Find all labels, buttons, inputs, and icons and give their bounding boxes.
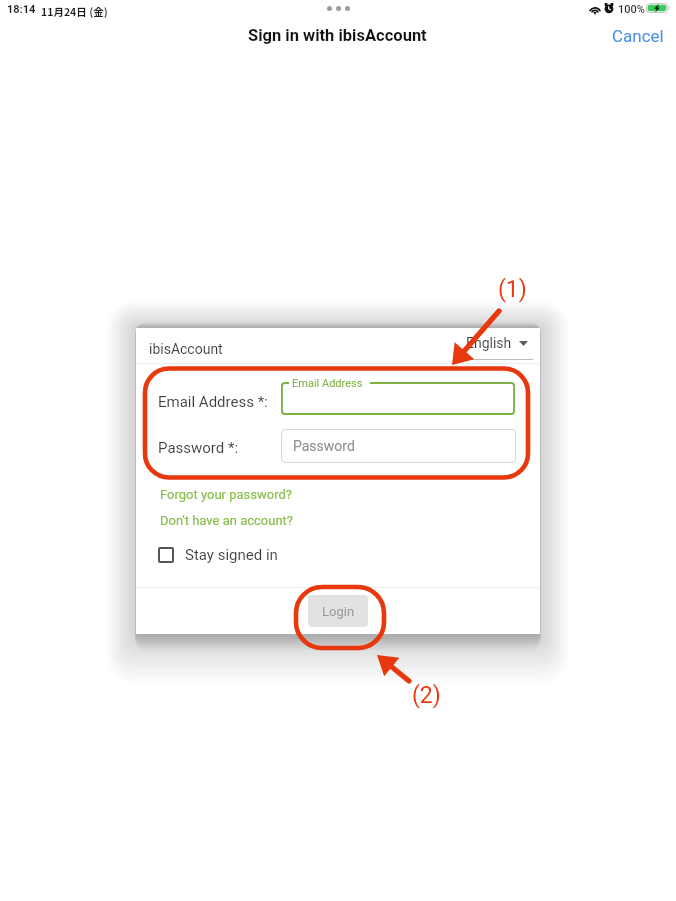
- button[interactable]: Password: [281, 429, 516, 463]
- staticText: Password: [293, 438, 355, 454]
- staticText: Sign in with ibisAccount: [248, 26, 427, 45]
- staticText: (2): [412, 682, 441, 709]
- staticText: Email Address *:: [158, 393, 268, 411]
- staticText: Cancel: [612, 26, 664, 46]
- button[interactable]: Don't have an account?: [158, 511, 295, 530]
- staticText: English: [466, 335, 512, 351]
- staticText: (1): [498, 276, 527, 303]
- staticText: Forgot your password?: [160, 487, 292, 502]
- staticText: Login: [322, 604, 355, 619]
- button[interactable]: Forgot your password?: [158, 485, 294, 504]
- staticText: Email Address: [292, 377, 363, 390]
- button[interactable]: Cancel: [600, 26, 676, 52]
- staticText: 100%: [618, 3, 645, 16]
- staticText: Stay signed in: [185, 546, 278, 564]
- button[interactable]: [281, 382, 515, 415]
- staticText: 18:14: [7, 3, 36, 16]
- staticText: 11月24日 (金): [41, 4, 108, 19]
- staticText: Password *:: [158, 439, 239, 457]
- button[interactable]: Login: [308, 595, 368, 627]
- staticText: ibisAccount: [149, 341, 223, 357]
- staticText: Don't have an account?: [160, 513, 293, 528]
- button[interactable]: Stay signed in: [155, 543, 281, 567]
- button[interactable]: English: [462, 332, 532, 354]
